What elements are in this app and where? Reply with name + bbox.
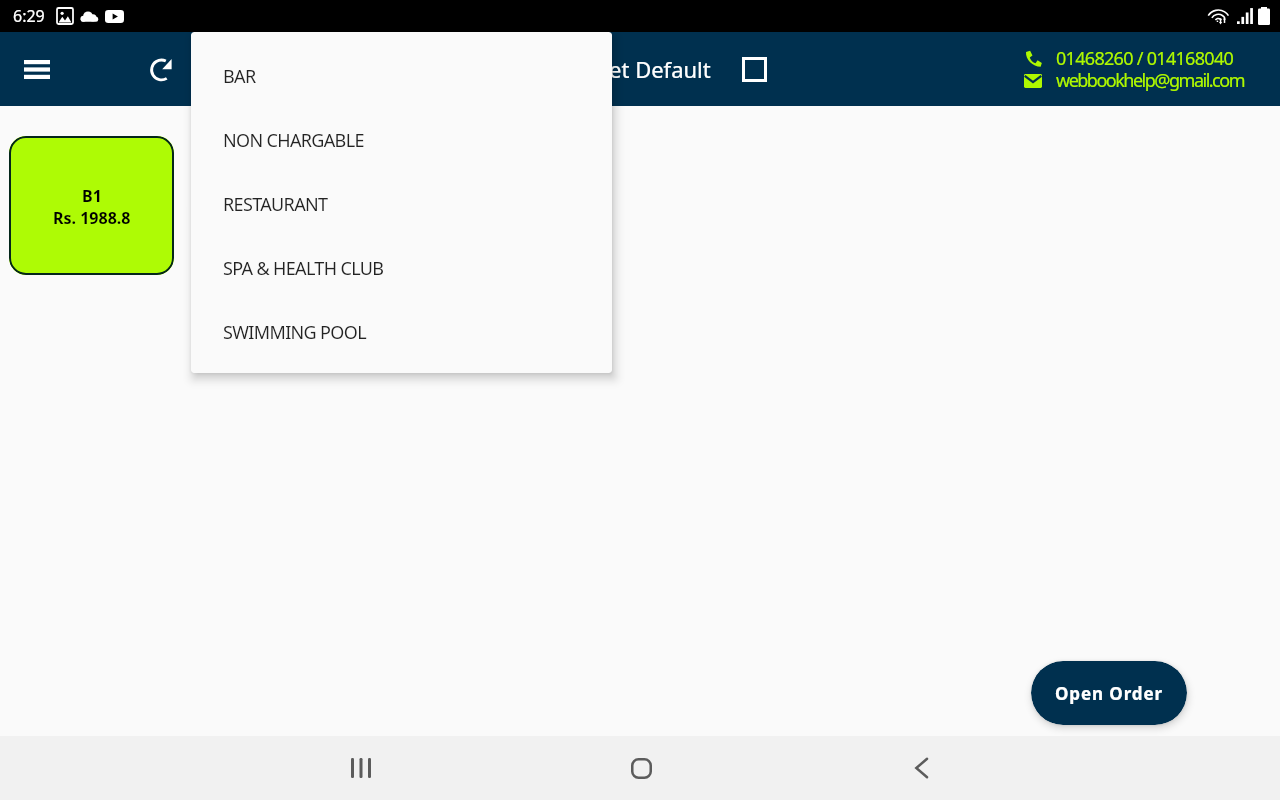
staticText: Rs. 1988.8 xyxy=(53,207,131,229)
staticText: SPA & HEALTH CLUB xyxy=(223,256,384,281)
staticText: Open Order xyxy=(1055,682,1164,705)
staticText: webbookhelp@gmail.com xyxy=(1056,68,1244,93)
button[interactable]: B1 xyxy=(9,136,174,275)
button[interactable]: BAR xyxy=(191,44,612,108)
button[interactable]: RESTAURANT xyxy=(191,172,612,236)
staticText: NON CHARGABLE xyxy=(223,128,364,153)
button[interactable]: Home xyxy=(601,736,681,800)
button[interactable]: Recents xyxy=(321,736,401,800)
staticText: RESTAURANT xyxy=(223,192,328,217)
button[interactable]: Menu xyxy=(13,45,61,93)
staticText: 6:29 xyxy=(13,5,45,27)
button[interactable]: Open Order xyxy=(1031,661,1187,725)
staticText: B1 xyxy=(82,185,102,207)
button[interactable]: NON CHARGABLE xyxy=(191,108,612,172)
staticText: SWIMMING POOL xyxy=(223,320,366,345)
button[interactable]: Refresh xyxy=(137,45,185,93)
button[interactable]: Set Default checkbox xyxy=(737,52,771,86)
button[interactable]: SPA & HEALTH CLUB xyxy=(191,236,612,300)
staticText: 01468260 / 014168040 xyxy=(1056,46,1234,71)
button[interactable]: Back xyxy=(881,736,961,800)
staticText: BAR xyxy=(223,64,256,89)
button[interactable]: SWIMMING POOL xyxy=(191,300,612,364)
staticText: Set Default xyxy=(597,54,711,84)
